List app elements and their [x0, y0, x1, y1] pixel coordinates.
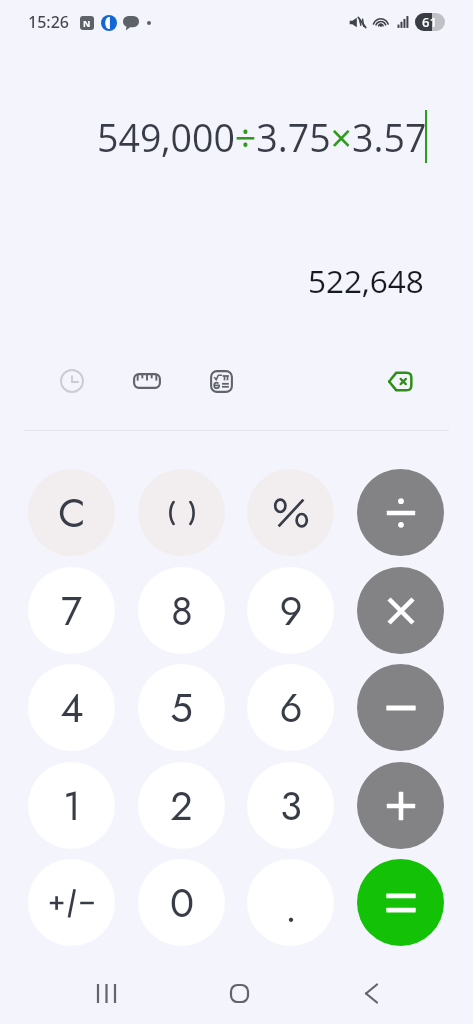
button[interactable]: 0 [138, 859, 225, 946]
button[interactable]: 7 [28, 567, 115, 654]
staticText: 4 [60, 679, 84, 737]
button[interactable]: 9 [247, 567, 334, 654]
button[interactable]: History [48, 357, 96, 405]
staticText: 549,000÷3.75×3.57 [97, 112, 427, 163]
staticText: 15:26 [28, 11, 69, 33]
staticText: 8 [171, 582, 193, 640]
button[interactable]: Equals [357, 859, 444, 946]
button[interactable]: 8 [138, 567, 225, 654]
staticText: 61 [422, 13, 437, 31]
staticText: 7 [61, 582, 82, 640]
staticText: . [285, 879, 297, 937]
staticText: 0 [170, 874, 194, 932]
button[interactable]: Unit converter [123, 357, 171, 405]
button[interactable]: C [28, 469, 115, 556]
button[interactable]: Plus minus [28, 859, 115, 946]
button[interactable]: Multiply [357, 567, 444, 654]
staticText: 2 [170, 777, 193, 835]
staticText: 6 [279, 679, 303, 737]
button[interactable]: . [247, 859, 334, 946]
staticText: 5 [170, 679, 193, 737]
button[interactable]: Recent apps [82, 969, 130, 1017]
staticText: 522,648 [308, 259, 424, 302]
staticText: N [83, 17, 91, 29]
button[interactable]: 2 [138, 762, 225, 849]
button[interactable]: Scientific calculator [197, 357, 245, 405]
button[interactable]: Back [347, 969, 395, 1017]
button[interactable]: Home [215, 969, 263, 1017]
staticText: 1 [63, 777, 81, 835]
button[interactable]: 5 [138, 664, 225, 751]
staticText: C [58, 484, 86, 542]
button[interactable]: 6 [247, 664, 334, 751]
button[interactable]: Backspace [376, 357, 424, 405]
button[interactable]: Parentheses [138, 469, 225, 556]
staticText: 9 [279, 582, 303, 640]
button[interactable]: Divide [357, 469, 444, 556]
staticText: 3 [280, 777, 302, 835]
button[interactable]: Add [357, 762, 444, 849]
button[interactable]: 3 [247, 762, 334, 849]
button[interactable]: 1 [28, 762, 115, 849]
button[interactable]: Percent [247, 469, 334, 556]
button[interactable]: Subtract [357, 664, 444, 751]
button[interactable]: 4 [28, 664, 115, 751]
